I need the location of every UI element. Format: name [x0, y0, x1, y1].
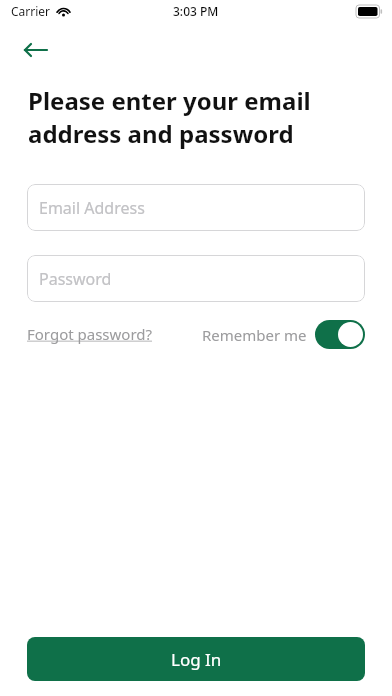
staticText: Remember me	[202, 325, 307, 345]
button[interactable]: Password	[27, 255, 365, 302]
staticText: Please enter your email	[28, 84, 311, 117]
button[interactable]: Remember me toggle	[315, 320, 365, 349]
staticText: Forgot password?	[27, 324, 153, 344]
button[interactable]: Email Address	[27, 184, 365, 231]
staticText: address and password	[28, 117, 294, 150]
staticText: Carrier	[11, 3, 51, 19]
button[interactable]: Back	[14, 34, 58, 66]
staticText: 3:03 PM	[173, 3, 219, 19]
staticText: Log In	[171, 648, 222, 671]
button[interactable]: Log In	[27, 637, 365, 681]
staticText: Password	[39, 268, 112, 290]
button[interactable]: Forgot password?	[27, 320, 153, 348]
staticText: Email Address	[39, 197, 145, 219]
button[interactable]: Remember me	[202, 320, 365, 349]
